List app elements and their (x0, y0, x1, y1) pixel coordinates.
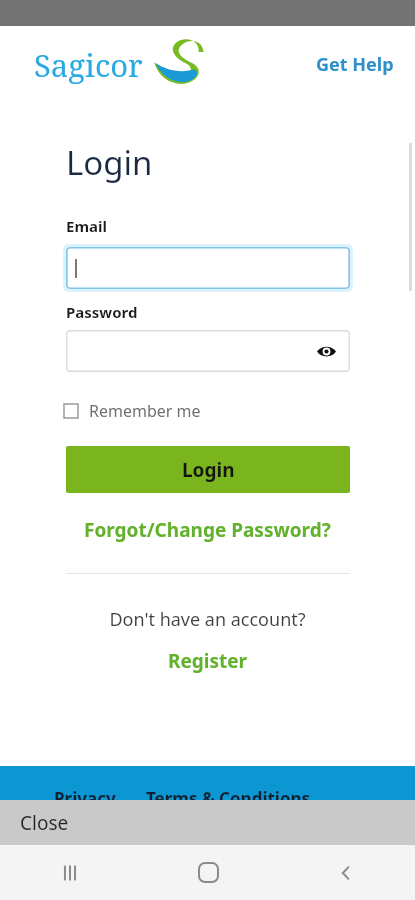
staticText: Terms & Conditions (146, 787, 311, 810)
button[interactable]: Back (277, 845, 415, 900)
button[interactable]: Recent apps (0, 845, 139, 900)
button[interactable] (63, 244, 353, 292)
button[interactable]: Close (0, 800, 415, 845)
staticText: Close (20, 810, 69, 836)
button[interactable]: Login (66, 446, 350, 493)
button[interactable]: Terms & Conditions (146, 787, 311, 810)
staticText: Remember me (89, 400, 201, 422)
button[interactable]: Privacy (54, 787, 116, 810)
staticText: Sagicor (34, 44, 143, 86)
button[interactable]: Get Help (312, 46, 398, 83)
staticText: Password (66, 302, 138, 322)
staticText: Login (66, 140, 153, 185)
staticText: Privacy (54, 787, 116, 810)
staticText: Email (66, 216, 107, 236)
button[interactable]: Show password (312, 337, 340, 365)
staticText: Don't have an account? (109, 607, 306, 632)
button[interactable]: Home (139, 845, 277, 900)
button[interactable]: Forgot/Change Password? (76, 513, 339, 547)
staticText: Register (168, 648, 248, 674)
staticText: Forgot/Change Password? (84, 517, 331, 543)
button[interactable]: Remember me (64, 398, 209, 424)
button[interactable]: Show password (66, 330, 350, 372)
button[interactable]: Register (158, 644, 258, 678)
staticText: Login (182, 457, 235, 483)
staticText: Get Help (316, 52, 394, 77)
